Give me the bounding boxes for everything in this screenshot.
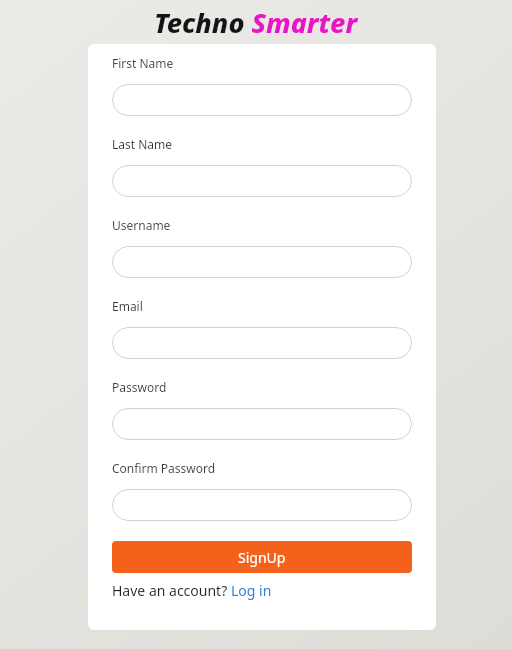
staticText: Password bbox=[112, 379, 167, 395]
staticText: Email bbox=[112, 298, 143, 314]
staticText: Have an account? bbox=[112, 581, 231, 600]
button[interactable] bbox=[112, 165, 412, 197]
staticText: Confirm Password bbox=[112, 460, 216, 476]
button[interactable] bbox=[112, 489, 412, 521]
button[interactable]: SignUp bbox=[112, 541, 412, 573]
button[interactable] bbox=[112, 327, 412, 359]
button[interactable] bbox=[112, 246, 412, 278]
staticText: Username bbox=[112, 217, 171, 233]
button[interactable] bbox=[112, 84, 412, 116]
staticText: First Name bbox=[112, 55, 174, 71]
button[interactable]: Log in bbox=[231, 581, 272, 600]
staticText: Log in bbox=[231, 581, 272, 600]
button[interactable] bbox=[112, 408, 412, 440]
staticText: Techno Smarter bbox=[154, 4, 358, 41]
staticText: SignUp bbox=[238, 548, 286, 567]
staticText: Last Name bbox=[112, 136, 173, 152]
